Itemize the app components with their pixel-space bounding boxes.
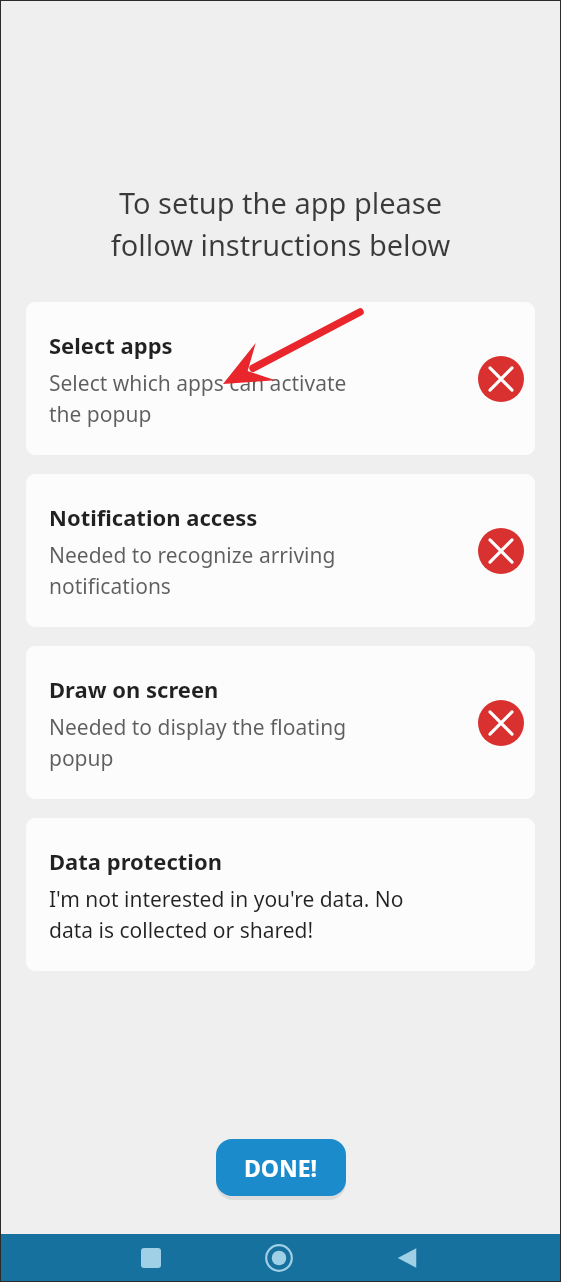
button[interactable]: Home bbox=[245, 1234, 313, 1281]
button[interactable]: Recents bbox=[117, 1234, 185, 1281]
staticText: DONE! bbox=[244, 1152, 318, 1183]
button[interactable]: Notification access bbox=[26, 474, 535, 627]
staticText: Draw on screen bbox=[49, 674, 219, 704]
button[interactable]: Data protection bbox=[26, 818, 535, 971]
button[interactable]: DONE! bbox=[216, 1139, 346, 1196]
button[interactable]: Not configured bbox=[467, 517, 535, 585]
button[interactable]: Not configured bbox=[467, 689, 535, 757]
staticText: Select which apps can activate the popup bbox=[49, 369, 347, 428]
staticText: To setup the app please follow instructi… bbox=[17, 183, 544, 264]
staticText: Notification access bbox=[49, 502, 258, 532]
button[interactable]: Back bbox=[373, 1234, 441, 1281]
button[interactable]: Not configured bbox=[467, 345, 535, 413]
staticText: Needed to display the floating popup bbox=[49, 713, 347, 772]
button[interactable]: Select apps bbox=[26, 302, 535, 455]
staticText: Select apps bbox=[49, 330, 173, 360]
staticText: I'm not interested in you're data. No da… bbox=[49, 885, 404, 944]
staticText: Data protection bbox=[49, 846, 222, 876]
button[interactable]: Draw on screen bbox=[26, 646, 535, 799]
staticText: Needed to recognize arriving notificatio… bbox=[49, 541, 336, 600]
